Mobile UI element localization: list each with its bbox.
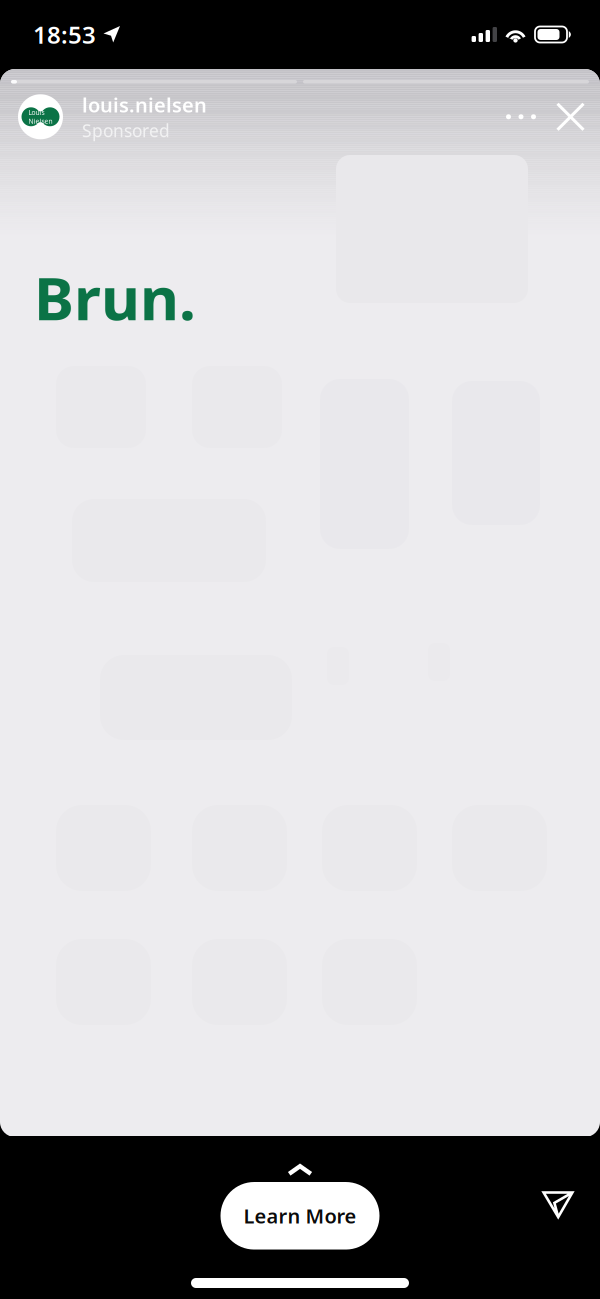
staticText: 18:53 (33, 19, 96, 50)
staticText: louis.nielsen (82, 91, 207, 118)
staticText: Brun. (34, 257, 196, 337)
button[interactable]: Swipe up for more (257, 1159, 343, 1181)
staticText: Louis Nielsen (28, 108, 52, 126)
staticText: Sponsored (82, 119, 170, 142)
button[interactable]: More options (495, 93, 547, 141)
button[interactable]: Close story (547, 93, 594, 140)
staticText: Learn More (243, 1202, 356, 1229)
button[interactable]: Learn More (220, 1182, 379, 1250)
button[interactable]: Send message (535, 1183, 581, 1226)
